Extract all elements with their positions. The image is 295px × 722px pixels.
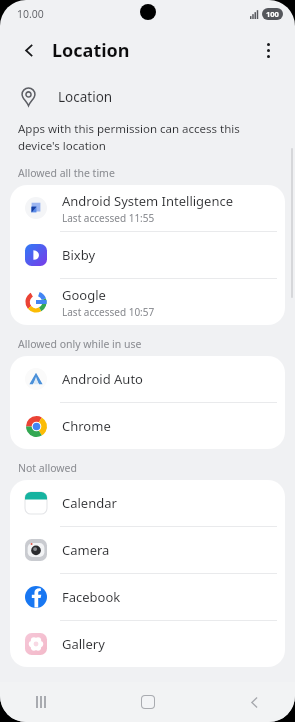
button[interactable]: Chrome <box>10 403 285 449</box>
staticText: Calendar <box>62 494 117 512</box>
staticText: Android System Intelligence <box>62 192 234 210</box>
button[interactable]: Camera <box>10 527 285 573</box>
staticText: Camera <box>62 541 110 559</box>
staticText: Gallery <box>62 635 105 653</box>
button[interactable]: Google <box>10 279 285 325</box>
button[interactable]: Home <box>129 683 167 721</box>
staticText: Last accessed 11:55 <box>62 211 155 225</box>
button[interactable]: Facebook <box>10 574 285 620</box>
staticText: Location <box>58 88 113 106</box>
button[interactable]: Recents <box>22 683 60 721</box>
button[interactable]: Android System Intelligence <box>10 185 285 231</box>
staticText: Location <box>52 38 130 63</box>
staticText: 10.00 <box>17 7 44 21</box>
staticText: Bixby <box>62 246 96 264</box>
staticText: Chrome <box>62 417 111 435</box>
staticText: Google <box>62 286 106 304</box>
staticText: Last accessed 10:57 <box>62 305 155 319</box>
button[interactable]: Bixby <box>10 232 285 278</box>
staticText: Facebook <box>62 588 121 606</box>
staticText: Apps with this permission can access thi… <box>18 121 240 153</box>
button[interactable]: Back <box>12 33 46 67</box>
button[interactable]: Gallery <box>10 621 285 667</box>
staticText: Android Auto <box>62 370 143 388</box>
button[interactable]: Calendar <box>10 480 285 526</box>
button[interactable]: More options <box>251 33 285 67</box>
button[interactable]: Android Auto <box>10 356 285 402</box>
staticText: Not allowed <box>18 461 77 475</box>
button[interactable]: Back <box>235 683 273 721</box>
staticText: Allowed all the time <box>18 166 115 180</box>
staticText: Allowed only while in use <box>18 337 142 351</box>
staticText: 100 <box>266 9 279 19</box>
